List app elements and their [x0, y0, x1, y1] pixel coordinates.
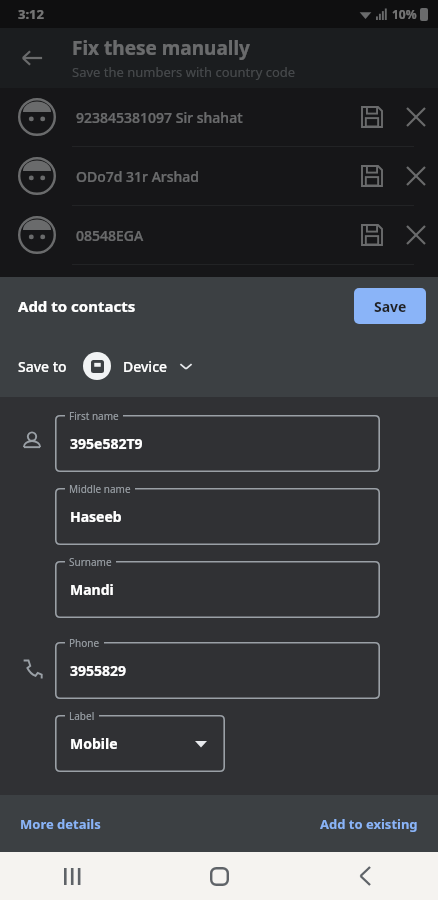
button[interactable]: 923845381097 Sir shahat: [0, 88, 438, 146]
staticText: Haseeb: [70, 507, 122, 526]
staticText: ODo7d 31r Arshad: [76, 167, 350, 186]
staticText: More details: [20, 815, 101, 833]
button[interactable]: 08548EGA: [0, 206, 438, 264]
button[interactable]: Phone: [55, 642, 380, 699]
staticText: First name: [69, 409, 119, 423]
button[interactable]: Save: [354, 288, 426, 324]
staticText: 10%: [392, 6, 417, 22]
staticText: Save to: [18, 357, 67, 376]
staticText: Mandi: [70, 580, 114, 599]
staticText: Device: [123, 357, 168, 376]
button[interactable]: Dismiss: [394, 154, 438, 198]
staticText: 3:12: [18, 5, 44, 23]
button[interactable]: Save number: [350, 154, 394, 198]
staticText: 08548EGA: [76, 226, 350, 245]
button[interactable]: More details: [12, 807, 109, 841]
staticText: 395e582T9: [70, 434, 143, 453]
button[interactable]: Save to: [0, 335, 438, 397]
button[interactable]: Add to existing: [312, 807, 426, 841]
button[interactable]: First name: [55, 415, 380, 472]
button[interactable]: Dismiss: [394, 213, 438, 257]
staticText: Middle name: [69, 482, 131, 496]
staticText: Save: [374, 297, 407, 316]
staticText: Mobile: [70, 734, 118, 753]
staticText: Save the numbers with country code: [72, 63, 296, 81]
button[interactable]: Label: [55, 715, 225, 772]
button[interactable]: Back: [8, 34, 56, 82]
button[interactable]: Recent apps: [0, 852, 146, 900]
button[interactable]: Back: [292, 852, 438, 900]
staticText: Fix these manually: [72, 35, 250, 61]
staticText: 923845381097 Sir shahat: [76, 108, 350, 127]
staticText: Add to contacts: [18, 296, 136, 316]
staticText: Add to existing: [320, 815, 418, 833]
button[interactable]: Dismiss: [394, 95, 438, 139]
staticText: Phone: [69, 636, 100, 650]
button[interactable]: Surname: [55, 561, 380, 618]
staticText: Surname: [69, 555, 112, 569]
button[interactable]: Save number: [350, 213, 394, 257]
button[interactable]: Save number: [350, 95, 394, 139]
button[interactable]: ODo7d 31r Arshad: [0, 147, 438, 205]
button[interactable]: Home: [146, 852, 292, 900]
staticText: Label: [69, 709, 95, 723]
button[interactable]: Middle name: [55, 488, 380, 545]
staticText: 3955829: [70, 661, 127, 680]
